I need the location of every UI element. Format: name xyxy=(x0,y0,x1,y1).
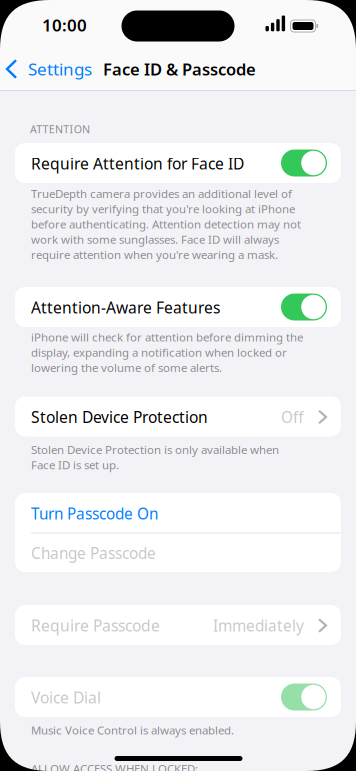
button[interactable]: Voice Dial xyxy=(281,683,327,710)
staticText: Change Passcode xyxy=(31,543,156,563)
staticText: TrueDepth camera provides an additional … xyxy=(31,186,301,262)
button[interactable]: Attention-Aware Features xyxy=(281,293,327,320)
staticText: Turn Passcode On xyxy=(31,503,158,524)
staticText: iPhone will check for attention before d… xyxy=(31,329,303,375)
button[interactable]: Back to Settings xyxy=(7,52,101,86)
staticText: Settings xyxy=(28,58,92,80)
staticText: Require Attention for Face ID xyxy=(31,153,244,174)
button[interactable]: Change Passcode xyxy=(31,533,325,572)
staticText: Music Voice Control is always enabled. xyxy=(31,722,234,738)
staticText: Immediately xyxy=(213,615,304,636)
staticText: Voice Dial xyxy=(31,687,101,708)
staticText: Face ID & Passcode xyxy=(103,58,256,80)
staticText: Stolen Device Protection xyxy=(31,407,208,427)
button[interactable]: Turn Passcode On xyxy=(31,494,325,533)
button[interactable]: Stolen Device Protection xyxy=(15,396,341,436)
staticText: Stolen Device Protection is only availab… xyxy=(31,442,279,472)
staticText: 10:00 xyxy=(42,14,87,36)
staticText: Off xyxy=(281,407,304,427)
staticText: ATTENTION xyxy=(30,122,90,136)
staticText: Require Passcode xyxy=(31,615,160,636)
staticText: ALLOW ACCESS WHEN LOCKED: xyxy=(31,761,198,771)
button[interactable]: Require Attention for Face ID xyxy=(281,149,327,176)
staticText: Attention-Aware Features xyxy=(31,297,220,318)
button[interactable]: Require Passcode xyxy=(15,605,341,645)
